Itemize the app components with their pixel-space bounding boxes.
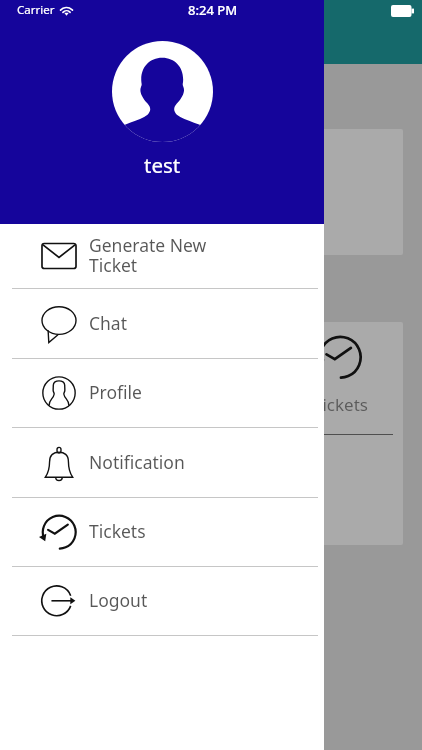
staticText: Tickets [313, 393, 368, 416]
button[interactable]: Generate New Ticket [0, 224, 324, 289]
button[interactable]: Logout [0, 567, 324, 636]
staticText: Generate New Ticket [89, 233, 207, 278]
staticText: Carrier [17, 2, 55, 18]
staticText: test [144, 151, 181, 179]
staticText: Tickets [89, 519, 146, 543]
button[interactable]: Chat [0, 289, 324, 359]
staticText: Notification [89, 450, 185, 474]
staticText: Logout [89, 588, 148, 612]
button[interactable]: Notification [0, 428, 324, 498]
button[interactable]: Profile [0, 359, 324, 428]
staticText: Profile [89, 380, 142, 404]
staticText: Chat [89, 311, 128, 335]
button[interactable]: Tickets [0, 498, 324, 567]
staticText: 8:24 PM [188, 1, 238, 19]
